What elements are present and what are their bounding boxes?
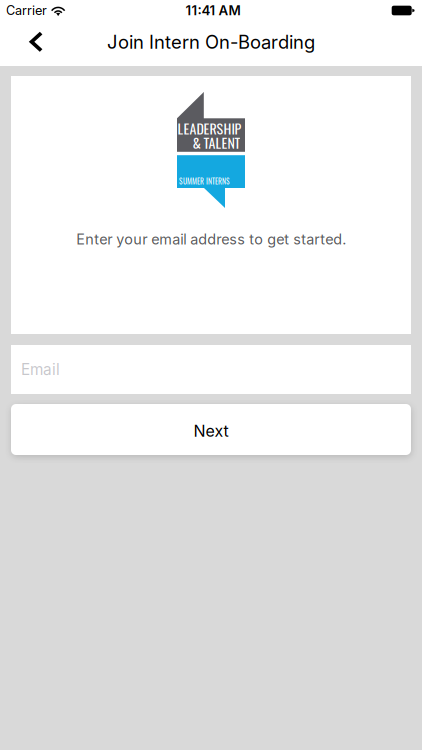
staticText: 11:41 AM [185,2,240,18]
staticText: Email [21,360,60,379]
staticText: Next [193,421,228,441]
staticText: Enter your email address to get started. [76,230,346,248]
staticText: SUMMER INTERNS [179,175,230,187]
staticText: Carrier [6,3,47,18]
staticText: & TALENT [192,132,240,153]
button[interactable]: Next [11,404,411,455]
staticText: Join Intern On-Boarding [107,31,315,53]
button[interactable]: Back [0,21,58,66]
staticText: LEADERSHIP [177,118,241,138]
